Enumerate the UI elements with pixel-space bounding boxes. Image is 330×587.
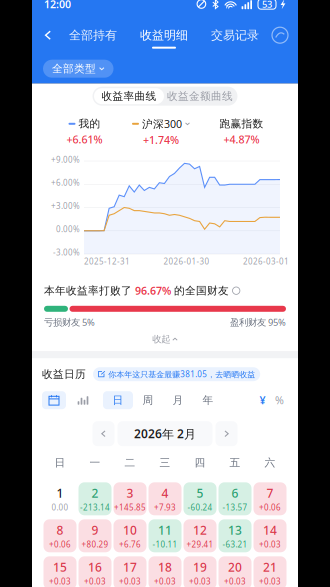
staticText: 一 (89, 456, 100, 469)
button[interactable]: 19 (183, 556, 216, 587)
button[interactable]: 9 (78, 519, 111, 552)
staticText: 周 (142, 394, 153, 407)
staticText: +6.61% (66, 132, 102, 146)
staticText: +0.03 (259, 539, 281, 550)
button[interactable]: 18 (148, 556, 181, 587)
staticText: +0.03 (154, 576, 176, 587)
staticText: 六 (264, 456, 275, 469)
staticText: 2026-03-01 (243, 256, 289, 267)
button[interactable]: 13 (218, 519, 251, 552)
button[interactable]: 图表视图 (71, 391, 95, 409)
button[interactable]: 返回 (37, 19, 59, 52)
staticText: +0.03 (49, 576, 71, 587)
button[interactable]: 2 (78, 482, 111, 515)
staticText: 13 (228, 522, 242, 538)
staticText: 交易记录 (211, 28, 259, 43)
button[interactable]: 月 (163, 391, 193, 409)
staticText: 19 (193, 559, 207, 575)
staticText: -60.24 (187, 502, 212, 513)
button[interactable]: 全部类型 (43, 60, 113, 78)
button[interactable]: ¥ (254, 391, 271, 409)
staticText: 53 (262, 0, 272, 10)
staticText: +4.87% (223, 132, 259, 146)
staticText: -63.21 (222, 539, 247, 550)
staticText: +0.03 (119, 576, 141, 587)
button[interactable]: 日历视图 (42, 391, 66, 409)
staticText: 1 (56, 485, 63, 501)
staticText: +6.00% (51, 177, 80, 188)
staticText: 8 (56, 522, 63, 538)
staticText: 我的 (78, 117, 100, 130)
staticText: 收益金额曲线 (167, 90, 233, 103)
staticText: 日 (54, 456, 65, 469)
button[interactable]: 7 (253, 482, 286, 515)
button[interactable]: 全部持有 (69, 19, 117, 52)
staticText: 18 (158, 559, 172, 575)
button[interactable]: 5 (183, 482, 216, 515)
staticText: -213.14 (80, 502, 110, 513)
button[interactable]: 15 (43, 556, 76, 587)
staticText: 收起 (152, 333, 170, 345)
button[interactable]: 上个月 (92, 421, 114, 446)
button[interactable]: 客服 (267, 19, 293, 52)
staticText: 2025-12-31 (84, 256, 130, 267)
staticText: 二 (124, 456, 135, 469)
button[interactable]: 6 (218, 482, 251, 515)
staticText: 0.00% (56, 224, 80, 234)
button[interactable]: 8 (43, 519, 76, 552)
staticText: 盈利财友 95% (230, 316, 286, 328)
staticText: +80.29 (81, 539, 108, 550)
staticText: 21 (263, 559, 277, 575)
button[interactable]: 20 (218, 556, 251, 587)
button[interactable]: 周 (133, 391, 163, 409)
button[interactable]: 收益率曲线 (94, 88, 164, 104)
button[interactable]: % (271, 391, 288, 409)
staticText: +0.06 (259, 502, 281, 513)
staticText: 2026-01-30 (163, 256, 209, 267)
staticText: 0.00 (51, 502, 68, 513)
button[interactable]: 你本年这只基金最赚381.05，去晒晒收益 (93, 367, 260, 381)
button[interactable]: 收起 (39, 328, 291, 350)
staticText: 年 (202, 394, 213, 407)
staticText: 亏损财友 5% (44, 316, 95, 328)
button[interactable]: 12 (183, 519, 216, 552)
button[interactable]: 收益明细 (140, 19, 188, 52)
staticText: -3.00% (53, 247, 80, 258)
staticText: 收益明细 (140, 28, 188, 43)
button[interactable]: 17 (113, 556, 146, 587)
button[interactable]: 11 (148, 519, 181, 552)
button[interactable]: 交易记录 (211, 19, 259, 52)
staticText: 12:00 (44, 0, 71, 11)
staticText: 11 (158, 522, 172, 538)
staticText: +145.85 (114, 502, 146, 513)
button[interactable]: 年 (193, 391, 223, 409)
staticText: 20 (228, 559, 242, 575)
button[interactable]: 14 (253, 519, 286, 552)
staticText: 16 (88, 559, 102, 575)
button[interactable]: 下个月 (215, 421, 237, 446)
button[interactable]: 16 (78, 556, 111, 587)
staticText: 17 (123, 559, 137, 575)
button[interactable]: 4 (148, 482, 181, 515)
staticText: 3 (126, 485, 133, 501)
staticText: 6 (231, 485, 238, 501)
staticText: +3.00% (51, 201, 80, 211)
button[interactable]: 1 (43, 482, 76, 515)
button[interactable]: 3 (113, 482, 146, 515)
staticText: 96.67% (135, 284, 171, 298)
staticText: +6.76 (119, 539, 141, 550)
staticText: -13.57 (222, 502, 247, 513)
staticText: 5 (196, 485, 203, 501)
button[interactable]: 10 (113, 519, 146, 552)
staticText: 日 (112, 394, 123, 407)
staticText: 全部类型 (52, 62, 96, 75)
staticText: 15 (53, 559, 67, 575)
button[interactable]: 21 (253, 556, 286, 587)
button[interactable]: 收益金额曲线 (164, 88, 236, 104)
button[interactable]: 日 (103, 391, 133, 409)
staticText: 14 (263, 522, 277, 538)
staticText: +9.00% (51, 154, 80, 165)
staticText: +0.03 (259, 576, 281, 587)
staticText: 全部持有 (69, 28, 117, 43)
staticText: 三 (159, 456, 170, 469)
